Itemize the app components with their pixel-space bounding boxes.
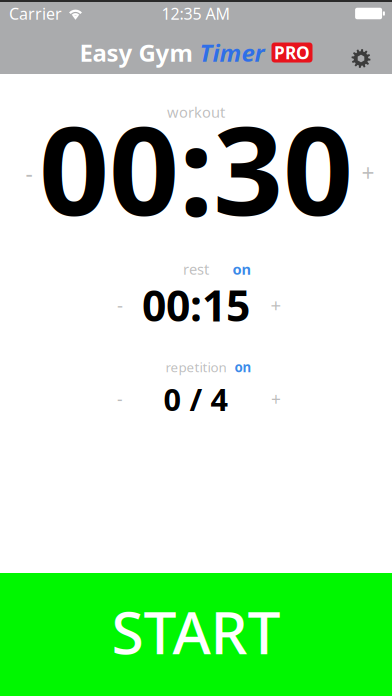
staticText: 00:15 [142, 277, 250, 333]
staticText: + [361, 158, 374, 188]
staticText: 12:35 AM [161, 3, 230, 24]
button[interactable]: Decrease rest [98, 283, 142, 327]
button[interactable]: on [227, 260, 257, 278]
button[interactable]: Increase repetition [256, 379, 296, 419]
staticText: workout [167, 102, 225, 122]
staticText: rest [183, 259, 209, 279]
staticText: START [111, 592, 280, 670]
staticText: Easy Gym [79, 37, 192, 68]
button[interactable]: START [0, 573, 392, 696]
button[interactable]: Decrease workout [1, 145, 57, 201]
staticText: 0 / 4 [163, 379, 228, 419]
staticText: PRO [274, 41, 310, 64]
staticText: on [232, 259, 251, 279]
staticText: - [117, 293, 123, 317]
button[interactable]: Settings [348, 31, 392, 74]
staticText: + [271, 387, 281, 410]
staticText: 00:30 [39, 87, 353, 249]
staticText: + [270, 293, 281, 317]
button[interactable]: Increase rest [254, 283, 298, 327]
button[interactable]: on [228, 358, 258, 376]
button[interactable]: Decrease repetition [100, 379, 140, 419]
staticText: - [25, 158, 32, 188]
staticText: - [117, 387, 123, 410]
staticText: Carrier [9, 3, 62, 24]
staticText: Timer [199, 37, 264, 68]
staticText: on [234, 358, 251, 376]
staticText: repetition [165, 358, 226, 376]
button[interactable]: Increase workout [340, 145, 392, 201]
